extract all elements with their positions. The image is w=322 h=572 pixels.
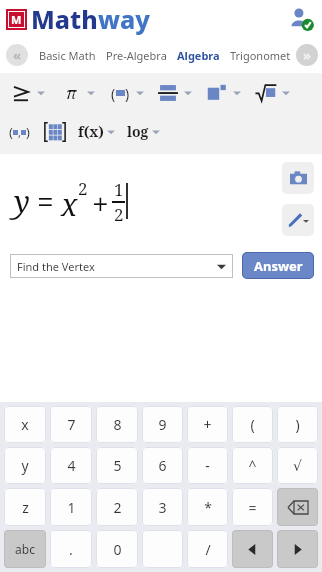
button[interactable]: Fraction [155, 80, 181, 106]
button[interactable]: f(x) [78, 122, 104, 141]
button[interactable]: Inequality [8, 80, 34, 106]
staticText: 4 [67, 456, 76, 475]
staticText: , [18, 125, 21, 140]
staticText: 9 [158, 415, 167, 434]
button[interactable]: x [4, 406, 46, 443]
button[interactable]: Left [232, 530, 273, 568]
button[interactable]: Account [288, 6, 314, 32]
button[interactable]: ) [277, 406, 318, 443]
staticText: 2 [114, 203, 124, 226]
button[interactable]: More [279, 86, 293, 100]
button[interactable]: Right [277, 530, 318, 568]
button[interactable]: ( [232, 406, 273, 443]
staticText: Answer [254, 257, 303, 275]
button[interactable]: + [187, 406, 228, 443]
button[interactable]: Exponent [204, 80, 230, 106]
staticText: 2 [78, 177, 88, 200]
button[interactable]: 8 [96, 406, 138, 443]
staticText: = [248, 498, 257, 517]
staticText: 6 [158, 456, 167, 475]
button[interactable]: Matrix [42, 119, 68, 145]
staticText: 3 [158, 498, 167, 517]
staticText: x [21, 415, 29, 434]
staticText: y [14, 181, 30, 222]
button[interactable]: log [127, 122, 149, 141]
button[interactable]: abc [4, 530, 46, 568]
button[interactable]: ^ [232, 447, 273, 484]
button[interactable]: = [232, 488, 273, 526]
staticText: = [37, 181, 54, 222]
button[interactable]: Find the Vertex [10, 254, 233, 278]
button[interactable]: 5 [96, 447, 138, 484]
staticText: Algebra [177, 48, 220, 63]
staticText: 1 [114, 178, 124, 201]
button[interactable]: More [34, 86, 48, 100]
staticText: » [303, 46, 311, 64]
button[interactable]: More [149, 125, 163, 139]
button[interactable]: . [50, 530, 92, 568]
button[interactable]: 9 [142, 406, 183, 443]
button[interactable]: 3 [142, 488, 183, 526]
button[interactable]: y [4, 447, 46, 484]
button[interactable]: More [84, 86, 98, 100]
button[interactable]: 7 [50, 406, 92, 443]
staticText: z [22, 498, 29, 517]
staticText: Basic Math [39, 48, 96, 63]
staticText: + [92, 183, 109, 224]
button[interactable]: Draw [282, 204, 314, 236]
button[interactable]: More [104, 125, 118, 139]
button[interactable]: - [187, 447, 228, 484]
staticText: Find the Vertex [17, 259, 95, 274]
staticText: « [13, 46, 21, 64]
button[interactable]: Pi [58, 80, 84, 106]
staticText: 5 [113, 456, 122, 475]
button[interactable]: 2 [96, 488, 138, 526]
staticText: ) [295, 415, 300, 434]
button[interactable]: More [181, 86, 195, 100]
staticText: 1 [67, 498, 76, 517]
button[interactable]: 4 [50, 447, 92, 484]
button[interactable]: More [133, 86, 147, 100]
staticText: ( [250, 415, 255, 434]
button[interactable] [142, 530, 183, 568]
staticText: f(x) [78, 122, 104, 141]
staticText: ( [111, 84, 116, 103]
button[interactable]: / [187, 530, 228, 568]
staticText: + [203, 415, 212, 434]
button[interactable]: 6 [142, 447, 183, 484]
staticText: 2 [113, 498, 122, 517]
staticText: ^ [248, 456, 257, 475]
staticText: - [205, 456, 210, 475]
staticText: ) [125, 84, 130, 103]
staticText: / [205, 540, 211, 559]
staticText: way [98, 2, 151, 36]
staticText: * [204, 498, 212, 517]
button[interactable]: Square root [253, 80, 279, 106]
button[interactable]: z [4, 488, 46, 526]
staticText: log [127, 122, 149, 141]
button[interactable]: Trigonomet [225, 40, 296, 70]
staticText: Math [31, 2, 98, 36]
button[interactable]: Basic Math [34, 40, 101, 70]
button[interactable]: 1 [50, 488, 92, 526]
button[interactable]: Backspace [277, 488, 318, 526]
staticText: ( [9, 123, 13, 141]
button[interactable]: √ [277, 447, 318, 484]
staticText: x [61, 184, 78, 225]
staticText: Pre-Algebra [106, 48, 167, 63]
button[interactable]: Pre-Algebra [101, 40, 172, 70]
staticText: M [11, 12, 22, 27]
button[interactable]: * [187, 488, 228, 526]
button[interactable]: Coordinate pair [6, 119, 32, 145]
button[interactable]: More [230, 86, 244, 100]
button[interactable]: 0 [96, 530, 138, 568]
staticText: Trigonomet [230, 48, 291, 63]
button[interactable]: Previous [6, 44, 28, 66]
button[interactable]: Parentheses [107, 80, 133, 106]
button[interactable]: Next [296, 44, 318, 66]
staticText: y [21, 456, 29, 475]
button[interactable]: Answer [242, 252, 314, 279]
button[interactable]: Camera [282, 162, 314, 194]
button[interactable]: Algebra [172, 40, 225, 70]
staticText: ) [26, 123, 30, 141]
